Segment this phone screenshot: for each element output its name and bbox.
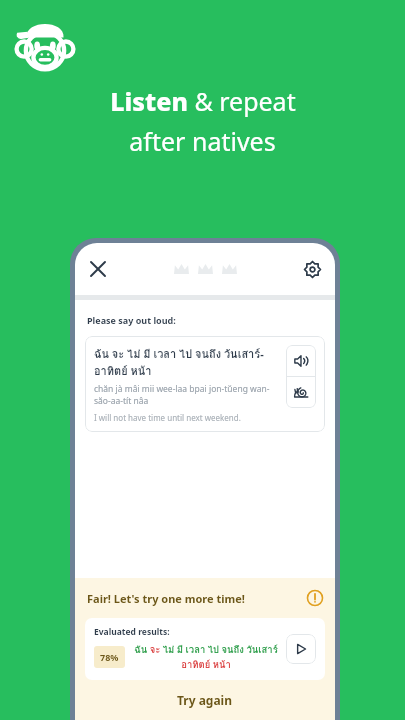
staticText: ฉัน จะ ไม่ มี เวลา ไป จนถึง วันเสาร์ อาท… — [132, 642, 280, 672]
button[interactable]: Play recording — [286, 634, 316, 664]
button[interactable]: Try again — [75, 692, 335, 708]
button[interactable]: Close — [83, 254, 113, 284]
button[interactable]: Play slowly — [286, 377, 316, 408]
staticText: Please say out loud: — [87, 314, 176, 326]
staticText: ฉัน จะ ไม่ มี เวลา ไป จนถึง วันเสาร์-อาท… — [94, 345, 280, 379]
staticText: 78% — [100, 651, 119, 663]
staticText: after natives — [129, 124, 276, 158]
staticText: chăn jà mâi mii wee-laa bpai jon-tŭeng w… — [94, 383, 280, 407]
button[interactable]: Settings — [297, 254, 327, 284]
staticText: Listen & repeat — [110, 84, 296, 118]
staticText: I will not have time until next weekend. — [94, 412, 241, 423]
button[interactable]: Play audio — [286, 345, 316, 376]
other: App logo — [16, 16, 74, 74]
staticText: Evaluated results: — [94, 626, 170, 638]
staticText: Fair! Let's try one more time! — [87, 591, 307, 606]
staticText: Try again — [177, 692, 233, 708]
